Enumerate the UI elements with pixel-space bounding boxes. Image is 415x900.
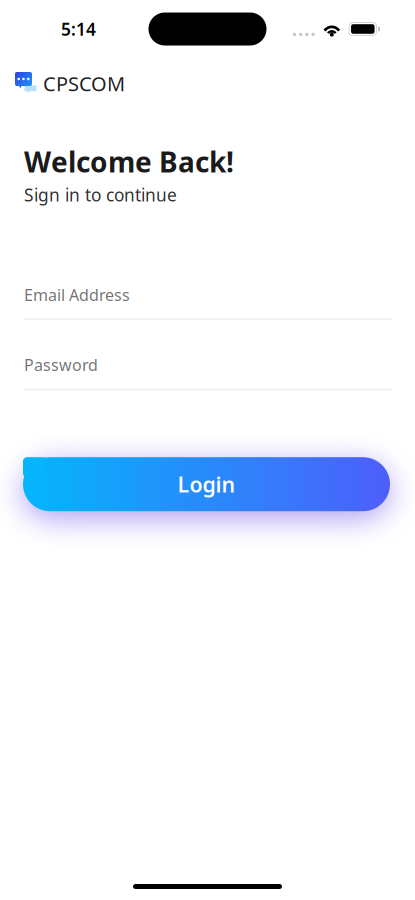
staticText: Sign in to continue (24, 183, 177, 206)
staticText: 5:14 (61, 17, 96, 40)
staticText: Password (24, 354, 98, 375)
button[interactable]: Login (23, 457, 390, 511)
button[interactable]: Email Address (24, 286, 392, 320)
button[interactable]: Password (24, 356, 392, 390)
staticText: CPSCOM (43, 70, 125, 97)
staticText: Welcome Back! (24, 143, 234, 180)
staticText: Email Address (24, 284, 130, 305)
staticText: Login (177, 470, 235, 498)
